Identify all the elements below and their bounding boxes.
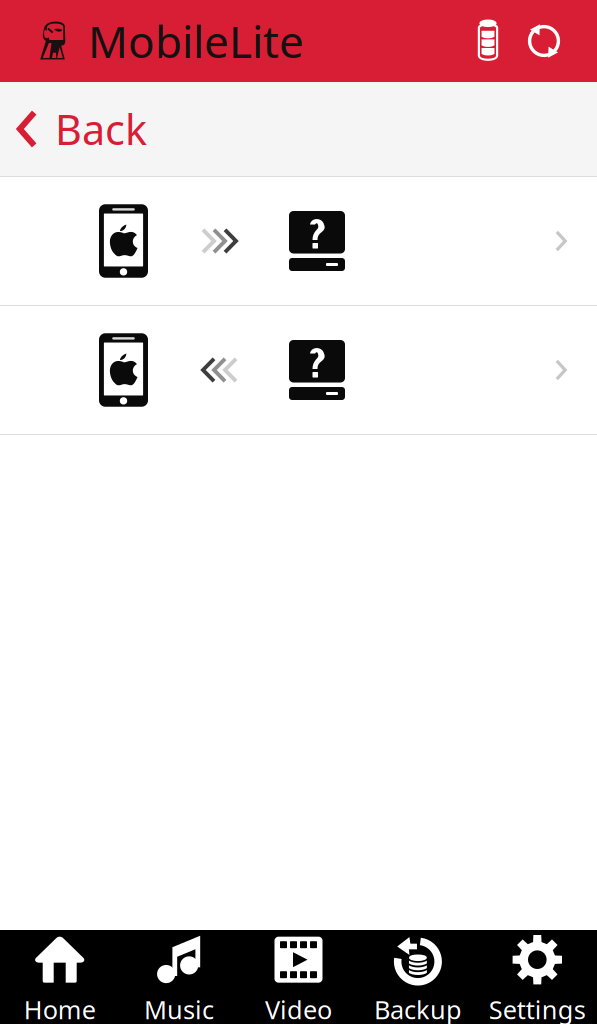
button[interactable]: Settings [478,930,597,1024]
button[interactable]: Refresh [517,0,571,82]
staticText: MobileLite [88,12,304,70]
button[interactable]: Copy from device to drive [0,177,597,305]
staticText: Home [24,993,96,1024]
button[interactable]: Storage [459,0,517,82]
staticText: Video [265,993,332,1024]
button[interactable]: Video [239,930,358,1024]
staticText: Backup [374,993,462,1024]
button[interactable]: Home [0,930,119,1024]
button[interactable]: Copy from drive to device [0,306,597,434]
staticText: Settings [489,993,586,1024]
staticText: Back [55,102,147,156]
button[interactable]: Backup [358,930,478,1024]
button[interactable]: Music [119,930,239,1024]
staticText: Music [144,993,214,1024]
button[interactable]: Back [0,82,597,176]
